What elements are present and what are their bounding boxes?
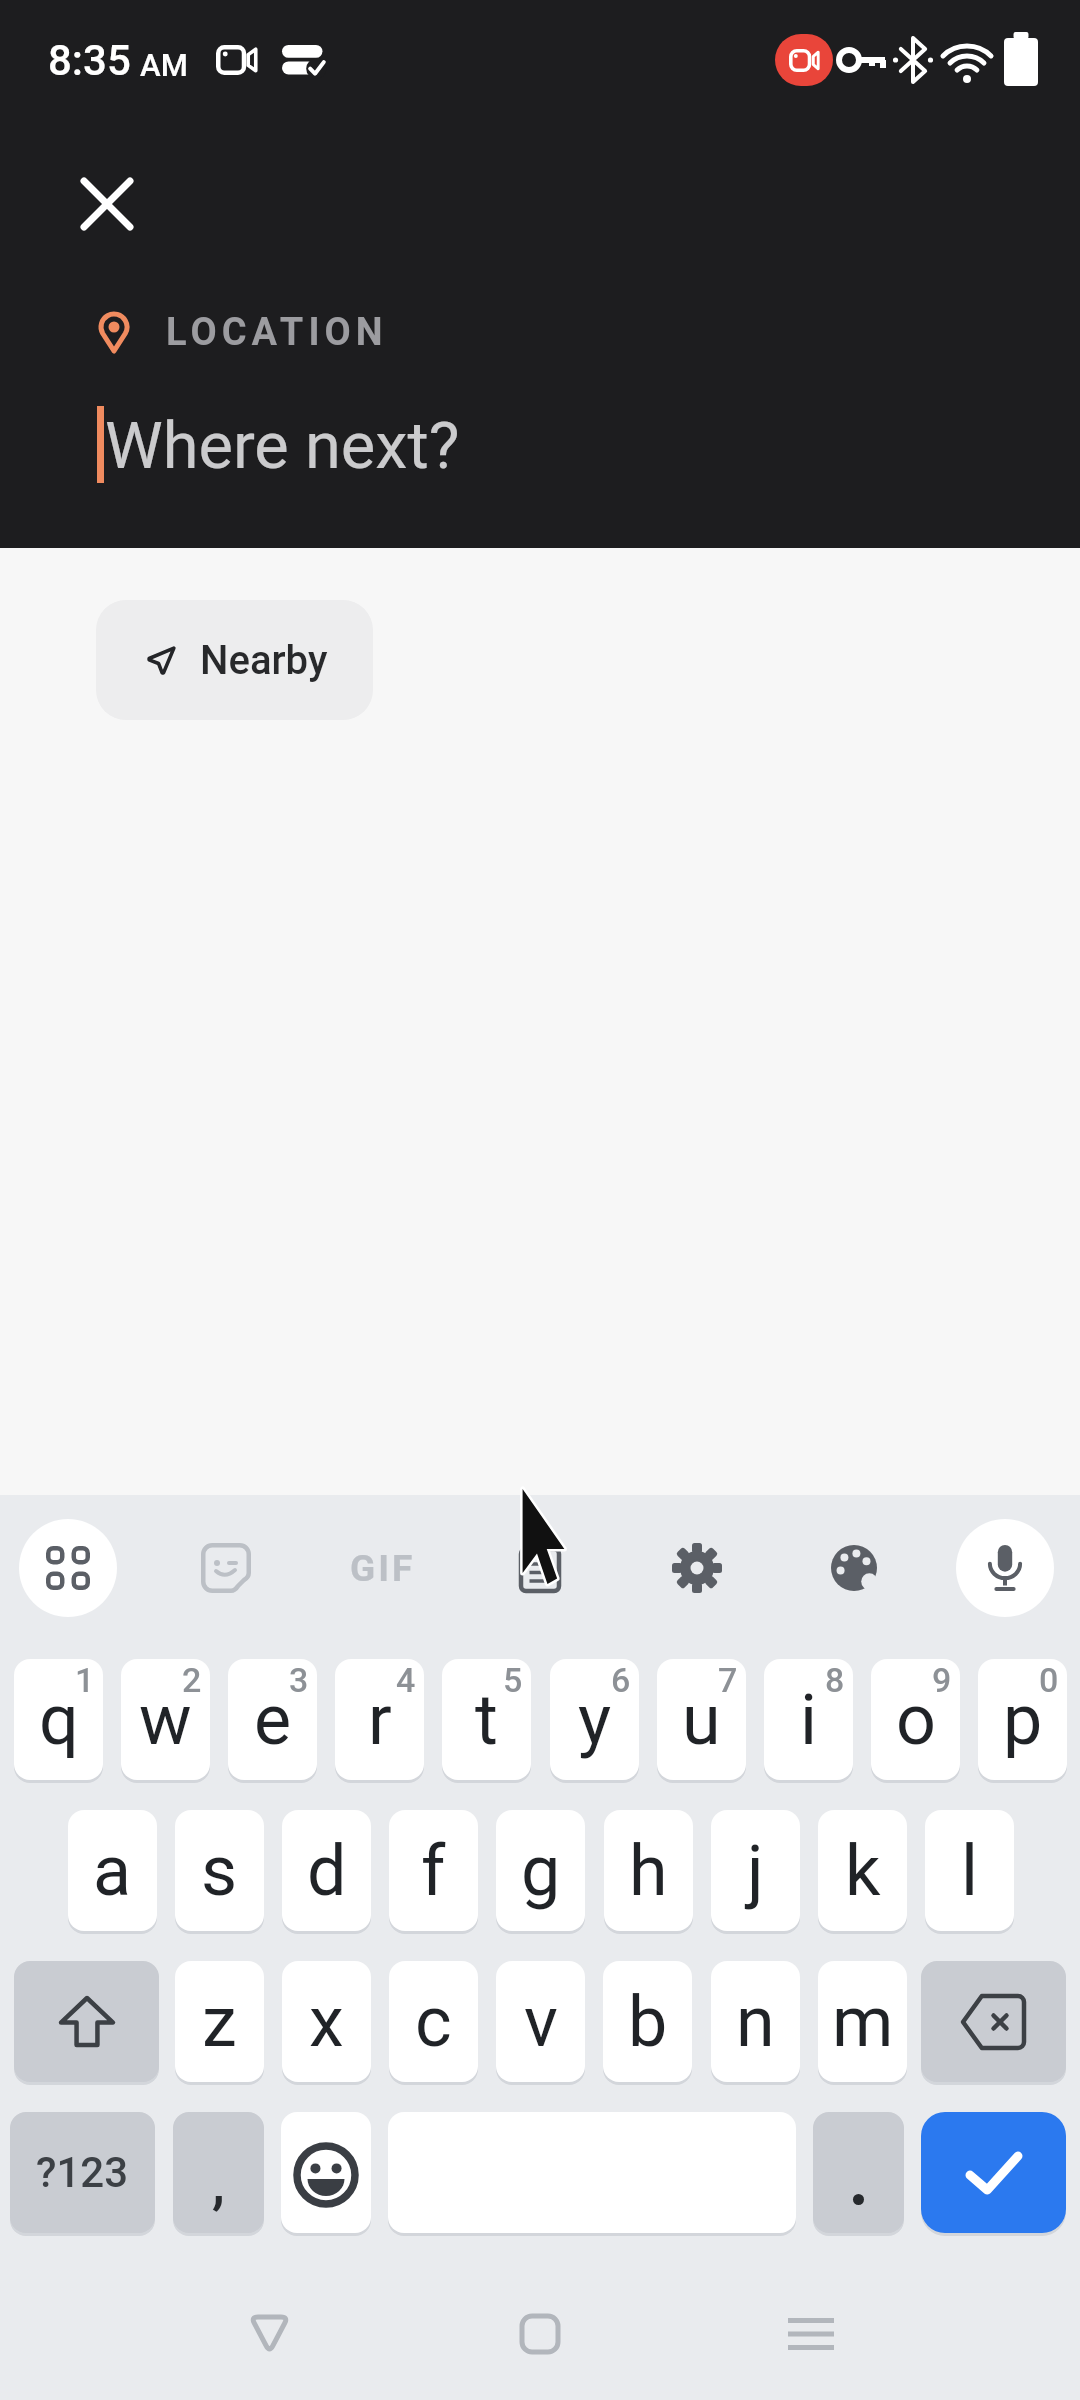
button[interactable]: r xyxy=(335,1659,424,1780)
button[interactable]: w xyxy=(121,1659,210,1780)
staticText: GIF xyxy=(350,1547,416,1590)
button[interactable]: x xyxy=(282,1961,371,2082)
button[interactable] xyxy=(921,2112,1066,2233)
button[interactable]: g xyxy=(496,1810,585,1931)
staticText: b xyxy=(628,1981,668,2063)
button[interactable]: c xyxy=(389,1961,478,2082)
staticText: 4 xyxy=(396,1660,416,1700)
button[interactable]: k xyxy=(818,1810,907,1931)
button[interactable]: f xyxy=(389,1810,478,1931)
staticText: 0 xyxy=(1039,1660,1059,1700)
staticText: 2 xyxy=(182,1660,202,1700)
button[interactable]: l xyxy=(925,1810,1014,1931)
staticText: r xyxy=(368,1679,392,1761)
staticText: f xyxy=(421,1830,446,1912)
staticText: g xyxy=(521,1830,561,1912)
button[interactable]: , xyxy=(173,2112,264,2233)
button[interactable]: q xyxy=(14,1659,103,1780)
button[interactable]: j xyxy=(711,1810,800,1931)
staticText: 6 xyxy=(611,1660,631,1700)
staticText: q xyxy=(39,1679,79,1761)
staticText: k xyxy=(845,1830,881,1912)
staticText: p xyxy=(1003,1679,1043,1761)
staticText: Where next? xyxy=(105,408,460,484)
button[interactable]: a xyxy=(68,1810,157,1931)
staticText: 1 xyxy=(75,1660,95,1700)
button[interactable] xyxy=(956,1519,1054,1617)
staticText: j xyxy=(747,1830,764,1912)
staticText: t xyxy=(475,1679,498,1761)
button[interactable] xyxy=(648,1519,746,1617)
staticText: o xyxy=(896,1679,936,1761)
staticText: m xyxy=(832,1981,894,2063)
staticText: v xyxy=(524,1981,558,2063)
staticText: z xyxy=(202,1981,237,2063)
button[interactable]: y xyxy=(550,1659,639,1780)
staticText: 7 xyxy=(718,1660,738,1700)
button[interactable]: Nearby xyxy=(96,600,373,720)
button[interactable] xyxy=(75,172,139,236)
button[interactable]: s xyxy=(175,1810,264,1931)
button[interactable]: u xyxy=(657,1659,746,1780)
staticText: s xyxy=(201,1830,238,1912)
button[interactable]: ?123 xyxy=(10,2112,155,2233)
staticText: Nearby xyxy=(200,637,328,684)
button[interactable] xyxy=(491,2285,589,2383)
button[interactable] xyxy=(220,2285,318,2383)
staticText: AM xyxy=(140,47,188,83)
button[interactable]: h xyxy=(604,1810,693,1931)
button[interactable] xyxy=(491,1519,589,1617)
staticText: ?123 xyxy=(36,2148,129,2197)
button[interactable]: b xyxy=(603,1961,692,2082)
button[interactable] xyxy=(813,2112,904,2233)
staticText: c xyxy=(415,1981,452,2063)
staticText: d xyxy=(307,1830,347,1912)
staticText: 9 xyxy=(932,1660,952,1700)
staticText: y xyxy=(578,1679,612,1761)
staticText: 5 xyxy=(503,1660,523,1700)
button[interactable] xyxy=(19,1519,117,1617)
staticText: n xyxy=(736,1981,775,2063)
button[interactable] xyxy=(177,1519,275,1617)
button[interactable]: i xyxy=(764,1659,853,1780)
staticText: e xyxy=(254,1679,292,1761)
button[interactable] xyxy=(805,1519,903,1617)
button[interactable]: d xyxy=(282,1810,371,1931)
staticText: h xyxy=(629,1830,668,1912)
staticText: 8:35 xyxy=(48,36,131,85)
button[interactable] xyxy=(281,2112,371,2233)
staticText: l xyxy=(961,1830,979,1912)
button[interactable] xyxy=(921,1961,1066,2082)
button[interactable]: m xyxy=(818,1961,907,2082)
staticText: , xyxy=(212,2149,225,2217)
button[interactable]: GIF xyxy=(334,1519,432,1617)
button[interactable]: t xyxy=(442,1659,531,1780)
button[interactable]: e xyxy=(228,1659,317,1780)
button[interactable]: v xyxy=(496,1961,585,2082)
button[interactable] xyxy=(762,2285,860,2383)
button[interactable] xyxy=(14,1961,159,2082)
staticText: w xyxy=(139,1679,192,1761)
staticText: x xyxy=(309,1981,344,2063)
staticText: u xyxy=(682,1679,721,1761)
staticText: 8 xyxy=(825,1660,845,1700)
button[interactable]: o xyxy=(871,1659,960,1780)
staticText: a xyxy=(93,1830,132,1912)
button[interactable]: n xyxy=(711,1961,800,2082)
button[interactable]: z xyxy=(175,1961,264,2082)
staticText: 3 xyxy=(289,1660,309,1700)
staticText: i xyxy=(800,1679,818,1761)
staticText: LOCATION xyxy=(166,310,388,355)
button[interactable]: p xyxy=(978,1659,1067,1780)
